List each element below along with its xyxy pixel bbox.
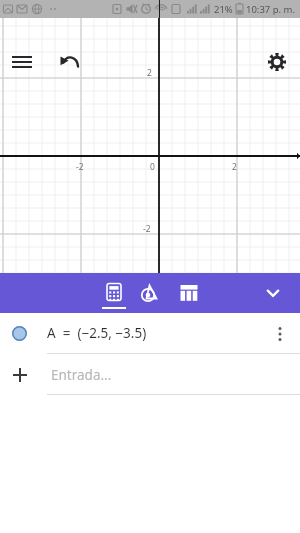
staticText: -2 xyxy=(76,161,84,173)
button[interactable]: Add input xyxy=(3,358,37,392)
button[interactable]: Table xyxy=(171,275,207,311)
staticText: -2 xyxy=(143,223,151,235)
button[interactable]: Add input xyxy=(0,354,300,395)
button[interactable]: Settings xyxy=(259,44,295,80)
button[interactable]: Geometry tools xyxy=(132,275,168,311)
staticText: 0 xyxy=(150,161,155,173)
button[interactable]: Calculator xyxy=(96,275,132,311)
button[interactable]: Collapse xyxy=(256,276,290,310)
staticText: 2 xyxy=(147,67,152,79)
staticText: 2 xyxy=(232,161,237,173)
button[interactable]: Menu xyxy=(4,44,40,80)
staticText: 21% xyxy=(214,3,233,16)
button[interactable]: More options xyxy=(264,318,296,350)
button[interactable]: A = (−2.5, −3.5) xyxy=(0,313,300,354)
button[interactable]: Undo xyxy=(52,44,88,80)
staticText: A = (−2.5, −3.5) xyxy=(47,324,147,342)
staticText: Entrada... xyxy=(51,366,112,384)
staticText: 10:37 p. m. xyxy=(246,3,296,16)
